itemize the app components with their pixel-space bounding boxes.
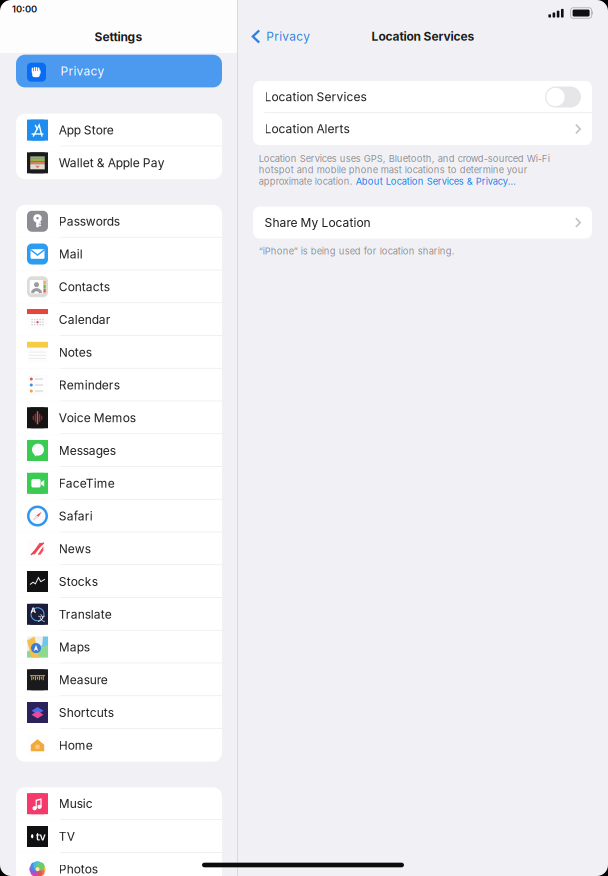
staticText: Messages — [59, 443, 116, 458]
button[interactable]: Measure — [16, 663, 222, 696]
staticText: Reminders — [59, 378, 120, 392]
button[interactable]: Stocks — [16, 565, 222, 598]
staticText: Settings — [94, 30, 142, 44]
staticText: Location Alerts — [264, 122, 349, 136]
button[interactable]: Location Services — [545, 86, 581, 107]
button[interactable]: Reminders — [16, 369, 222, 401]
staticText: Passwords — [59, 214, 120, 228]
button[interactable]: Home — [16, 729, 222, 762]
staticText: Measure — [59, 672, 108, 687]
button[interactable]: Photos — [16, 853, 222, 876]
staticText: News — [59, 541, 91, 556]
button[interactable]: Share My Location — [253, 207, 592, 239]
staticText: Shortcuts — [59, 705, 114, 720]
button[interactable]: Shortcuts — [16, 696, 222, 729]
staticText: Music — [59, 796, 93, 811]
staticText: Wallet & Apple Pay — [59, 156, 165, 170]
staticText: Maps — [59, 640, 90, 654]
staticText: 文 — [38, 613, 46, 623]
staticText: Location Services — [264, 90, 366, 104]
staticText: Notes — [59, 345, 92, 359]
staticText: TV — [59, 829, 75, 844]
staticText: Stocks — [59, 574, 98, 589]
button[interactable]: tv — [16, 820, 222, 853]
staticText: Contacts — [59, 279, 110, 294]
staticText: App Store — [59, 123, 114, 137]
staticText: tv — [36, 829, 46, 844]
button[interactable]: A — [16, 598, 222, 631]
staticText: Share My Location — [264, 215, 370, 230]
staticText: Translate — [59, 607, 112, 621]
staticText: “iPhone” is being used for location shar… — [259, 246, 455, 257]
button[interactable]: Wallet & Apple Pay — [16, 146, 222, 179]
button[interactable]: Maps — [16, 631, 222, 663]
button[interactable]: Contacts — [16, 270, 222, 303]
button[interactable]: Notes — [16, 336, 222, 369]
button[interactable]: App Store — [16, 114, 222, 146]
staticText: Calendar — [59, 312, 111, 327]
button[interactable]: Safari — [16, 500, 222, 532]
staticText: Location Services uses GPS, Bluetooth, a… — [259, 153, 550, 187]
button[interactable]: FaceTime — [16, 467, 222, 500]
staticText: Safari — [59, 509, 93, 523]
button[interactable]: Privacy — [248, 21, 314, 52]
staticText: Privacy — [60, 64, 104, 78]
staticText: Mail — [59, 247, 83, 261]
staticText: FaceTime — [59, 476, 115, 490]
staticText: A — [31, 605, 37, 616]
staticText: Privacy — [266, 29, 310, 44]
staticText: Location Services — [371, 29, 474, 44]
button[interactable]: Calendar — [16, 303, 222, 336]
button[interactable]: Mail — [16, 238, 222, 270]
button[interactable]: Music — [16, 787, 222, 820]
button[interactable]: Passwords — [16, 205, 222, 238]
button[interactable]: Voice Memos — [16, 401, 222, 434]
button[interactable]: Location Alerts — [253, 113, 592, 145]
staticText: Photos — [59, 862, 98, 876]
staticText: Voice Memos — [59, 410, 136, 425]
staticText: 10:00 — [12, 3, 37, 15]
staticText: Home — [59, 738, 93, 752]
button[interactable]: Messages — [16, 434, 222, 467]
button[interactable]: Privacy — [16, 55, 222, 87]
button[interactable]: News — [16, 532, 222, 565]
